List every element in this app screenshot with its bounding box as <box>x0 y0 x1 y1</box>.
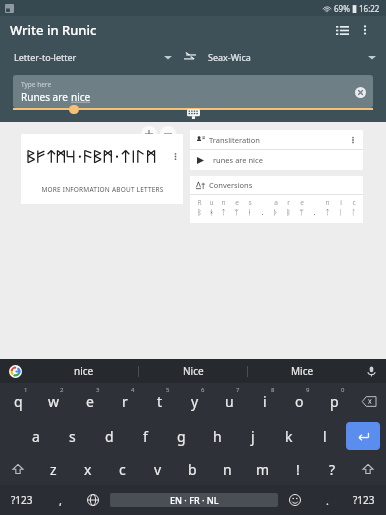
staticText: runes are nice <box>213 155 263 165</box>
button[interactable]: Type here <box>13 75 373 108</box>
button[interactable]: Google <box>0 359 30 383</box>
button[interactable]: Keyboard <box>185 108 201 120</box>
button[interactable]: ?123 <box>342 485 386 515</box>
button[interactable]: EN · FR · NL <box>110 493 278 507</box>
staticText: 7 <box>236 386 240 394</box>
button[interactable]: Mice <box>248 359 356 383</box>
staticText: s <box>69 427 76 446</box>
button[interactable]: nice <box>30 359 138 383</box>
staticText: ᚽ <box>247 209 252 217</box>
button[interactable]: s <box>54 419 91 453</box>
staticText: ᛚ <box>351 209 356 217</box>
button[interactable]: Zoom in <box>141 126 157 142</box>
staticText: n <box>325 198 330 207</box>
staticText: EN · FR · NL <box>170 494 219 506</box>
button[interactable]: e <box>72 383 107 419</box>
button[interactable]: Rune options <box>167 148 183 164</box>
button[interactable]: z <box>36 453 70 485</box>
staticText: y <box>191 392 199 411</box>
staticText: z <box>50 460 57 479</box>
button[interactable]: List view <box>330 18 354 42</box>
button[interactable]: v <box>140 453 175 485</box>
button[interactable]: m <box>245 453 280 485</box>
button[interactable]: Zoom out <box>160 126 176 142</box>
staticText: i <box>263 392 267 411</box>
button[interactable]: ! <box>280 453 315 485</box>
button[interactable]: q <box>0 383 36 419</box>
staticText: Write in Runic <box>10 21 97 39</box>
staticText: 5 <box>166 386 170 394</box>
button[interactable]: runes are nice <box>190 150 363 170</box>
button[interactable]: b <box>175 453 210 485</box>
button[interactable]: i <box>247 383 282 419</box>
button[interactable]: Clear text <box>351 83 369 101</box>
staticText: b <box>188 460 197 479</box>
button[interactable]: y <box>177 383 212 419</box>
staticText: h <box>213 427 222 446</box>
staticText: Nice <box>183 364 204 378</box>
staticText: g <box>177 427 186 446</box>
button[interactable]: f <box>127 419 163 453</box>
button[interactable]: r <box>107 383 142 419</box>
staticText: ᛒ <box>197 209 202 217</box>
button[interactable]: Backspace <box>352 383 386 419</box>
staticText: nice <box>71 90 91 104</box>
button[interactable]: x <box>70 453 105 485</box>
button[interactable]: Conversions <box>190 176 363 223</box>
button[interactable]: Change language <box>76 485 110 515</box>
button[interactable]: h <box>199 419 235 453</box>
staticText: Type here <box>21 80 52 89</box>
button[interactable]: Comma <box>44 485 76 515</box>
button[interactable]: Transliteration <box>190 130 363 170</box>
button[interactable]: w <box>36 383 72 419</box>
staticText: ᛘ <box>299 209 304 217</box>
button[interactable]: g <box>163 419 199 453</box>
button[interactable]: d <box>91 419 127 453</box>
button[interactable]: o <box>282 383 317 419</box>
button[interactable]: Shift <box>350 453 386 485</box>
button[interactable]: Seax-Wica <box>202 44 386 70</box>
staticText: i <box>340 198 342 207</box>
staticText: ᛒ <box>286 209 291 217</box>
staticText: Transliteration <box>209 135 260 145</box>
button[interactable]: Shift <box>0 453 36 485</box>
button[interactable]: Rune options <box>21 134 183 204</box>
button[interactable]: a <box>17 419 54 453</box>
staticText: k <box>285 427 293 446</box>
button[interactable]: t <box>142 383 177 419</box>
staticText: ᛏ <box>221 209 226 217</box>
button[interactable]: Transliteration options <box>346 133 360 147</box>
staticText: ! <box>296 460 300 479</box>
staticText: e <box>235 198 239 207</box>
button[interactable]: l <box>307 419 343 453</box>
staticText: 8 <box>271 386 275 394</box>
button[interactable]: j <box>235 419 271 453</box>
staticText: a <box>32 427 40 446</box>
button[interactable]: Nice <box>139 359 247 383</box>
button[interactable]: Voice input <box>356 359 386 383</box>
button[interactable]: Emoji <box>278 485 312 515</box>
staticText: ᛁ <box>338 209 343 217</box>
staticText: 0 <box>341 386 345 394</box>
button[interactable]: Letter-to-letter <box>0 44 178 70</box>
staticText: 4 <box>131 386 135 394</box>
staticText: Letter-to-letter <box>14 51 77 63</box>
staticText: 9 <box>306 386 310 394</box>
button[interactable]: ?123 <box>0 485 44 515</box>
staticText: 3 <box>96 386 100 394</box>
staticText: Runes are <box>21 90 71 104</box>
staticText: n <box>221 198 226 207</box>
button[interactable]: p <box>317 383 352 419</box>
button[interactable]: k <box>271 419 307 453</box>
button[interactable]: Swap <box>178 45 202 69</box>
button[interactable]: c <box>105 453 140 485</box>
button[interactable]: n <box>210 453 245 485</box>
button[interactable]: Enter <box>346 422 380 450</box>
button[interactable]: ? <box>315 453 350 485</box>
button[interactable]: More options <box>354 19 376 41</box>
button[interactable]: MORE INFORMATION ABOUT LETTERS <box>21 178 183 200</box>
button[interactable]: Period <box>312 485 342 515</box>
button[interactable]: u <box>212 383 247 419</box>
staticText: R <box>197 198 202 207</box>
staticText: ᛏ <box>325 209 330 217</box>
